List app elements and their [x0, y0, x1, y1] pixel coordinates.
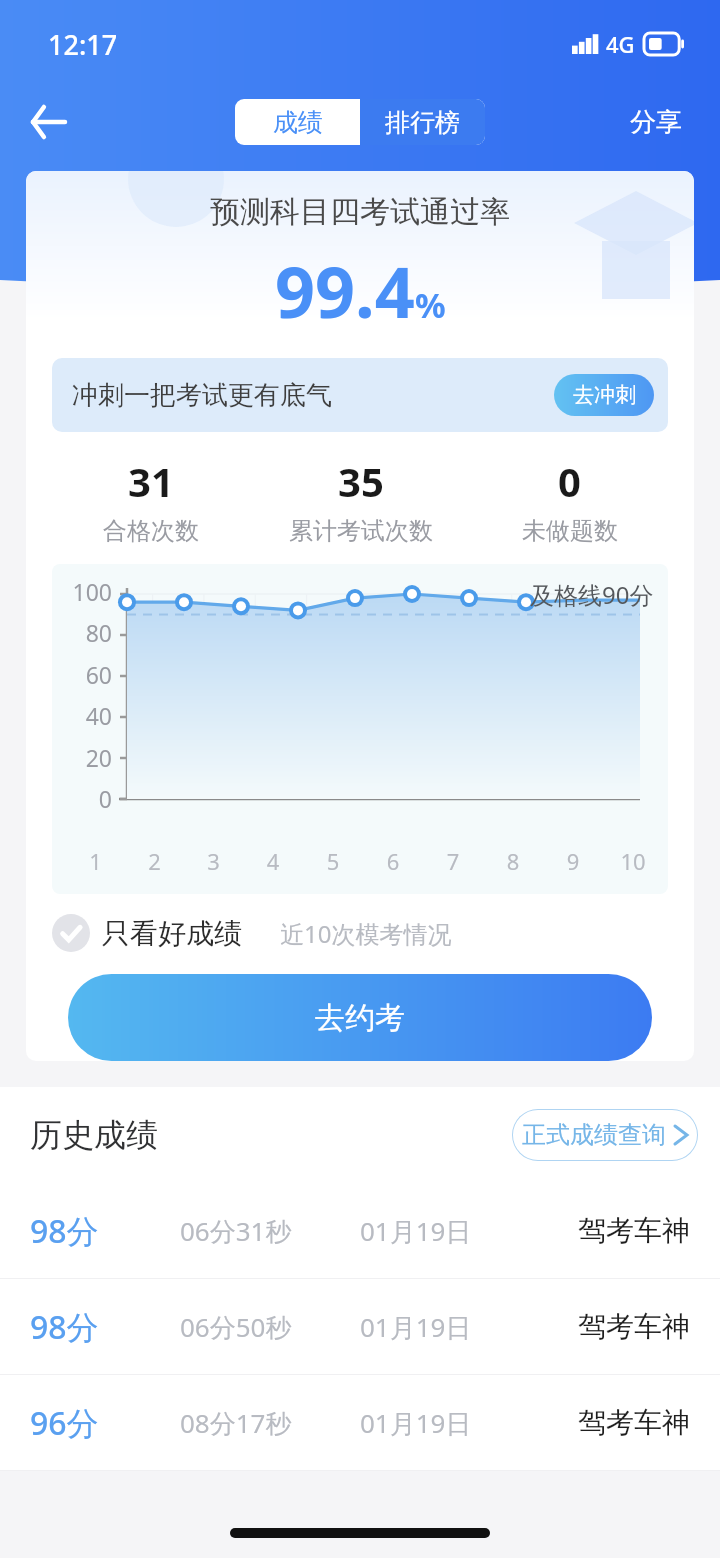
button[interactable]: 排行榜 [360, 99, 485, 145]
staticText: 7 [423, 846, 483, 876]
staticText: 100 [68, 576, 112, 607]
button[interactable]: 正式成绩查询 [512, 1109, 698, 1161]
staticText: 排行榜 [385, 107, 460, 138]
staticText: % [415, 282, 446, 328]
staticText: 1 [66, 846, 125, 876]
button[interactable]: 冲刺一把考试更有底气 [52, 358, 668, 432]
staticText: 98分 [30, 1305, 180, 1349]
staticText: 近10次模考情况 [280, 917, 452, 950]
staticText: 01月19日 [360, 1309, 540, 1345]
staticText: 20 [68, 742, 112, 773]
staticText: 0 [558, 454, 581, 508]
staticText: 去冲刺 [573, 382, 636, 408]
staticText: 累计考试次数 [289, 516, 433, 546]
staticText: 合格次数 [103, 516, 199, 546]
button[interactable]: 96分 [0, 1375, 720, 1470]
staticText: 驾考车神 [540, 1213, 690, 1248]
staticText: 10 [603, 846, 663, 876]
staticText: 4 [243, 846, 303, 876]
staticText: 8 [483, 846, 543, 876]
staticText: 35 [338, 454, 384, 508]
staticText: 01月19日 [360, 1213, 540, 1249]
staticText: 0 [68, 783, 112, 814]
staticText: 08分17秒 [180, 1405, 360, 1441]
staticText: 06分50秒 [180, 1309, 360, 1345]
staticText: 及格线90分 [530, 578, 654, 611]
staticText: 只看好成绩 [102, 916, 242, 951]
button[interactable]: 98分 [0, 1183, 720, 1278]
staticText: 驾考车神 [540, 1405, 690, 1440]
staticText: 去约考 [315, 999, 405, 1037]
staticText: 99.4 [275, 243, 415, 338]
staticText: 正式成绩查询 [522, 1120, 666, 1150]
staticText: 冲刺一把考试更有底气 [72, 379, 332, 412]
button[interactable]: 98分 [0, 1279, 720, 1374]
staticText: 98分 [30, 1209, 180, 1253]
staticText: 9 [543, 846, 603, 876]
staticText: 成绩 [273, 107, 323, 138]
staticText: 80 [68, 617, 112, 648]
button[interactable]: 只看好成绩 [52, 914, 242, 952]
staticText: 预测科目四考试通过率 [26, 193, 694, 231]
staticText: 分享 [630, 106, 682, 139]
staticText: 60 [68, 659, 112, 690]
button[interactable]: 去冲刺 [554, 374, 654, 416]
staticText: 01月19日 [360, 1405, 540, 1441]
staticText: 5 [303, 846, 363, 876]
staticText: 4G [606, 29, 635, 59]
button[interactable]: 成绩 [235, 99, 360, 145]
staticText: 31 [128, 454, 174, 508]
staticText: 历史成绩 [30, 1115, 158, 1155]
staticText: 06分31秒 [180, 1213, 360, 1249]
staticText: 3 [184, 846, 243, 876]
staticText: 12:17 [48, 26, 118, 63]
staticText: 96分 [30, 1401, 180, 1445]
staticText: 6 [363, 846, 423, 876]
staticText: 40 [68, 700, 112, 731]
staticText: 2 [125, 846, 184, 876]
staticText: 未做题数 [522, 516, 618, 546]
button[interactable]: Back [20, 94, 76, 150]
staticText: 驾考车神 [540, 1309, 690, 1344]
button[interactable]: 去约考 [68, 974, 652, 1061]
button[interactable]: 分享 [622, 98, 690, 147]
